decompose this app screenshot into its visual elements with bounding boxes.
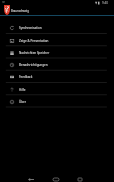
button[interactable]: Braunschweig [0, 5, 114, 15]
button[interactable]: Nachrichten Speicher [0, 46, 114, 58]
staticText: Nachrichten Speicher [19, 51, 50, 55]
button[interactable]: Back [21, 170, 41, 182]
staticText: Hilfe [19, 88, 26, 92]
button[interactable]: Über [0, 95, 114, 107]
staticText: Synchronisation [19, 26, 42, 30]
button[interactable]: Hilfe [0, 83, 114, 95]
staticText: 9:40 [102, 1, 108, 5]
button[interactable]: Feedback [0, 70, 114, 82]
staticText: Über [19, 100, 26, 104]
staticText: Braunschweig [11, 9, 29, 13]
button[interactable]: Synchronisation [0, 21, 114, 33]
button[interactable]: Home [46, 170, 66, 182]
staticText: Zeige & Presentation [19, 39, 49, 43]
button[interactable]: Recent apps [70, 170, 90, 182]
staticText: Feedback [19, 75, 33, 79]
button[interactable]: Zeige & Presentation [0, 34, 114, 46]
button[interactable]: Benachrichtigungen [0, 58, 114, 70]
staticText: Benachrichtigungen [19, 63, 48, 67]
